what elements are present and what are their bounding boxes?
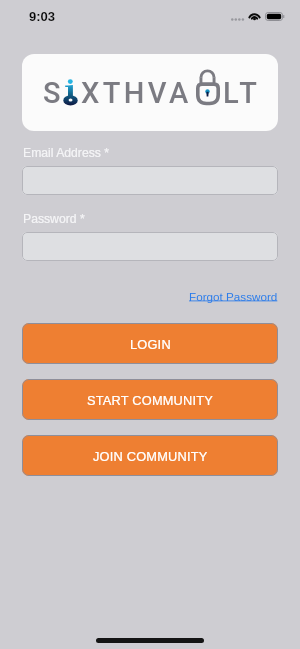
staticText: S — [43, 76, 64, 110]
staticText: START COMMUNITY — [87, 393, 213, 407]
button[interactable]: LOGIN — [22, 323, 278, 364]
staticText: 9:03 — [29, 9, 56, 24]
button[interactable] — [22, 232, 278, 261]
staticText: XTHVA — [81, 76, 192, 110]
staticText: JOIN COMMUNITY — [93, 449, 208, 463]
staticText: Email Address * — [23, 146, 110, 160]
staticText: LT — [223, 76, 261, 110]
button[interactable]: Forgot Password — [168, 290, 278, 303]
staticText: Password * — [23, 212, 85, 226]
staticText: Forgot Password — [189, 290, 278, 303]
staticText: LOGIN — [130, 337, 171, 351]
button[interactable] — [22, 166, 278, 195]
button[interactable]: JOIN COMMUNITY — [22, 435, 278, 476]
button[interactable]: START COMMUNITY — [22, 379, 278, 420]
